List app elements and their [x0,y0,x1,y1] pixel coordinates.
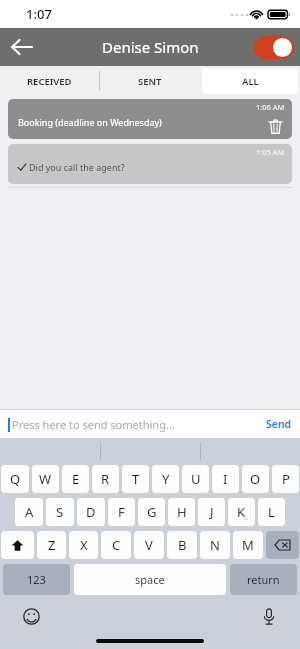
staticText: N [210,536,220,554]
staticText: return [247,572,280,587]
button[interactable]: A [15,498,43,526]
button[interactable]: G [138,498,165,526]
staticText: C [112,536,121,554]
button[interactable]: U [182,465,209,493]
button[interactable]: ALL [202,68,298,94]
staticText: X [80,536,88,554]
staticText: W [39,470,52,488]
button[interactable]: space [74,564,226,595]
button[interactable]: Emoji [18,603,44,629]
button[interactable]: Dictate [256,603,282,629]
button[interactable]: F [108,498,135,526]
button[interactable]: Toggle notifications [254,36,294,59]
staticText: Did you call the agent? [29,161,125,173]
button[interactable]: N [200,531,230,559]
staticText: G [147,503,157,521]
staticText: T [132,470,140,488]
staticText: 1:05 AM [256,147,285,157]
button[interactable]: 1:06 AM [8,99,292,139]
staticText: L [268,503,275,521]
staticText: SENT [138,75,162,88]
button[interactable]: Back [0,28,44,66]
staticText: space [135,572,165,587]
staticText: 123 [27,572,46,587]
staticText: Q [10,470,21,488]
button[interactable]: W [32,465,59,493]
staticText: Send [266,417,292,431]
staticText: V [145,536,153,554]
button[interactable]: M [233,531,263,559]
button[interactable]: C [101,531,131,559]
button[interactable]: return [230,564,297,595]
button[interactable]: X [69,531,98,559]
staticText: 1:07 [26,5,52,23]
button[interactable]: E [62,465,89,493]
button[interactable]: SENT [100,66,200,96]
button[interactable]: Shift [1,531,34,559]
staticText: D [86,503,96,521]
staticText: I [223,470,228,488]
button[interactable]: B [167,531,197,559]
button[interactable]: 1:05 AM [8,144,292,184]
staticText: Y [162,470,170,488]
button[interactable]: R [92,465,119,493]
staticText: J [210,503,214,521]
button[interactable]: Z [37,531,66,559]
staticText: P [282,470,290,488]
staticText: Booking (deadline on Wednesday) [18,116,162,128]
button[interactable]: S [46,498,74,526]
staticText: S [56,503,64,521]
staticText: Denise Simon [102,37,199,57]
button[interactable]: Send [266,417,292,431]
button[interactable]: D [77,498,105,526]
button[interactable]: RECEIVED [0,66,99,96]
button[interactable]: L [258,498,285,526]
button[interactable]: 123 [3,564,70,595]
button[interactable]: Q [1,465,29,493]
staticText: Press here to send something... [12,417,175,432]
staticText: H [177,503,187,521]
staticText: M [242,536,254,554]
staticText: ALL [242,75,259,88]
button[interactable]: Y [152,465,179,493]
staticText: U [191,470,201,488]
button[interactable]: H [168,498,195,526]
button[interactable]: I [212,465,239,493]
staticText: O [250,470,261,488]
button[interactable]: P [272,465,299,493]
staticText: E [72,470,80,488]
staticText: B [178,536,187,554]
staticText: 1:06 AM [256,102,285,112]
staticText: R [101,470,110,488]
button[interactable]: Backspace [266,531,299,559]
staticText: F [118,503,125,521]
button[interactable]: Delete [264,115,286,137]
staticText: RECEIVED [27,75,72,88]
button[interactable]: J [198,498,225,526]
staticText: K [237,503,246,521]
staticText: A [25,503,34,521]
button[interactable]: O [242,465,269,493]
staticText: Z [48,536,56,554]
button[interactable]: K [228,498,255,526]
button[interactable]: V [134,531,164,559]
button[interactable]: T [122,465,149,493]
